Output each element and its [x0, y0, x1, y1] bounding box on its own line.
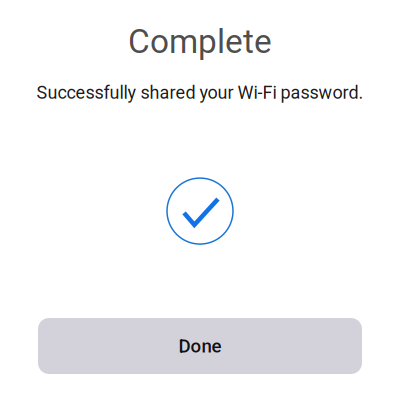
staticText: Complete	[128, 22, 272, 61]
button[interactable]: Done	[38, 318, 362, 374]
staticText: Successfully shared your Wi‑Fi password.	[36, 82, 363, 103]
staticText: Done	[178, 335, 221, 357]
